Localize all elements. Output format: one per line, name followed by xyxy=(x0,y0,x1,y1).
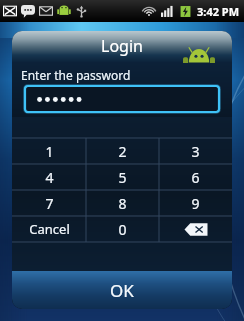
staticText: 3 xyxy=(191,142,200,161)
button[interactable]: 9 xyxy=(159,190,232,216)
staticText: 0 xyxy=(118,220,127,239)
staticText: 6 xyxy=(191,168,200,187)
button[interactable]: 6 xyxy=(159,164,232,190)
button[interactable]: 1 xyxy=(12,138,86,164)
button[interactable]: Cancel xyxy=(12,216,86,242)
staticText: 8 xyxy=(118,194,127,213)
button[interactable]: 8 xyxy=(86,190,159,216)
staticText: 9 xyxy=(191,194,200,213)
staticText: 2 xyxy=(118,142,127,161)
button[interactable] xyxy=(25,86,219,112)
button[interactable]: OK xyxy=(12,271,232,309)
staticText: Cancel xyxy=(29,220,70,238)
button[interactable]: 5 xyxy=(86,164,159,190)
staticText: OK xyxy=(110,279,134,302)
button[interactable]: 2 xyxy=(86,138,159,164)
staticText: 1 xyxy=(45,142,54,161)
button[interactable]: 0 xyxy=(86,216,159,242)
button[interactable]: 7 xyxy=(12,190,86,216)
staticText: Enter the password xyxy=(21,67,131,83)
button[interactable]: Backspace xyxy=(159,216,232,242)
staticText: 3:42 PM xyxy=(197,4,240,19)
staticText: Login xyxy=(101,35,143,57)
staticText: 4 xyxy=(45,168,54,187)
staticText: 7 xyxy=(45,194,54,213)
button[interactable]: 4 xyxy=(12,164,86,190)
button[interactable]: 3 xyxy=(159,138,232,164)
staticText: 5 xyxy=(118,168,127,187)
